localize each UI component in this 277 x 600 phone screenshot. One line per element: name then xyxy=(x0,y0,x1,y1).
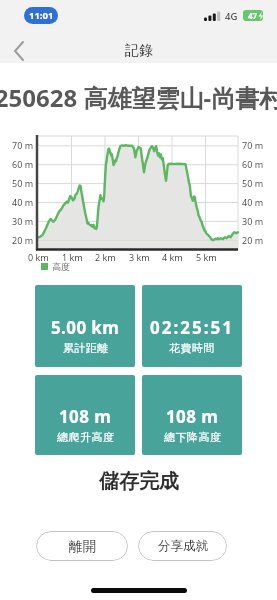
staticText: 40 m xyxy=(242,196,264,208)
staticText: 02:25:51 xyxy=(150,316,234,339)
staticText: 30 m xyxy=(12,215,34,227)
staticText: 60 m xyxy=(242,158,264,170)
staticText: 60 m xyxy=(12,158,34,170)
button[interactable]: 分享成就 xyxy=(138,531,227,561)
staticText: 4 km xyxy=(162,251,183,263)
staticText: 儲存完成 xyxy=(99,469,179,494)
button[interactable]: 離開 xyxy=(36,531,128,561)
staticText: 70 m xyxy=(242,139,264,151)
staticText: 50 m xyxy=(242,177,264,189)
staticText: 47 xyxy=(248,10,258,21)
staticText: 分享成就 xyxy=(158,538,208,554)
staticText: 總下降高度 xyxy=(164,430,221,444)
staticText: 70 m xyxy=(12,139,34,151)
staticText: 累計距離 xyxy=(63,341,109,355)
staticText: 108 m xyxy=(166,405,219,428)
staticText: 50 m xyxy=(12,177,34,189)
staticText: 40 m xyxy=(12,196,34,208)
button[interactable]: 108 m xyxy=(35,375,135,455)
staticText: 0 km xyxy=(28,251,49,263)
staticText: 離開 xyxy=(69,538,96,555)
button[interactable] xyxy=(8,38,32,64)
button[interactable]: 02:25:51 xyxy=(142,285,242,367)
staticText: 4G xyxy=(225,10,238,23)
button[interactable]: 108 m xyxy=(142,375,242,455)
staticText: 3 km xyxy=(129,251,150,263)
staticText: 5.00 km xyxy=(51,316,120,339)
staticText: 20 m xyxy=(12,234,34,246)
staticText: 高度 xyxy=(52,261,70,272)
staticText: 30 m xyxy=(242,215,264,227)
staticText: 5 km xyxy=(196,251,217,263)
button[interactable]: 5.00 km xyxy=(35,285,135,367)
staticText: 記錄 xyxy=(125,42,153,60)
staticText: 11:01 xyxy=(29,9,54,22)
staticText: 250628 高雄望雲山-尚書村 xyxy=(0,81,277,114)
staticText: 1 km xyxy=(62,251,83,263)
button[interactable]: 11:01 xyxy=(24,7,58,24)
staticText: 108 m xyxy=(59,405,112,428)
staticText: 花費時間 xyxy=(169,341,215,355)
staticText: 總爬升高度 xyxy=(57,430,114,444)
staticText: 2 km xyxy=(95,251,116,263)
staticText: 20 m xyxy=(242,234,264,246)
